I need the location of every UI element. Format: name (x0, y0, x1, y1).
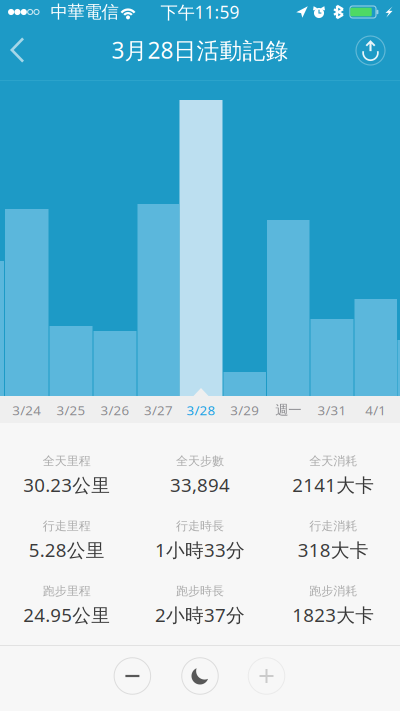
staticText: 3月28日活動記錄 (111, 35, 288, 65)
staticText: 行走里程 (43, 519, 91, 533)
staticText: 中華電信 (50, 1, 118, 23)
staticText: 318大卡 (298, 537, 369, 562)
staticText: 5.28公里 (29, 537, 105, 562)
staticText: 全天里程 (43, 454, 91, 468)
staticText: 3/26 (100, 401, 129, 419)
staticText: 行走時長 (176, 519, 224, 533)
button[interactable]: Share (348, 24, 392, 68)
staticText: 跑步消耗 (309, 584, 357, 598)
staticText: 30.23公里 (23, 472, 110, 497)
staticText: 24.95公里 (23, 602, 110, 627)
staticText: 跑步時長 (176, 584, 224, 598)
staticText: 3/24 (12, 401, 41, 419)
staticText: 2141大卡 (292, 472, 374, 497)
button[interactable]: Increase (242, 652, 290, 700)
button[interactable]: Back (0, 24, 44, 68)
staticText: 跑步里程 (43, 584, 91, 598)
staticText: 2小時37分 (155, 602, 245, 627)
button[interactable]: Sleep mode (176, 652, 224, 700)
staticText: 行走消耗 (309, 519, 357, 533)
staticText: 4/1 (365, 401, 386, 419)
button[interactable]: Decrease (108, 652, 156, 700)
staticText: 全天步數 (176, 454, 224, 468)
staticText: 3/25 (56, 401, 85, 419)
staticText: 3/28 (186, 401, 215, 419)
staticText: 1小時33分 (155, 537, 245, 562)
staticText: 3/29 (230, 401, 259, 419)
staticText: 週一 (275, 402, 301, 418)
staticText: 3/27 (144, 401, 173, 419)
staticText: 3/31 (317, 401, 346, 419)
staticText: 33,894 (170, 472, 230, 497)
staticText: 下午11:59 (160, 0, 239, 23)
staticText: 1823大卡 (292, 602, 374, 627)
staticText: 全天消耗 (309, 454, 357, 468)
